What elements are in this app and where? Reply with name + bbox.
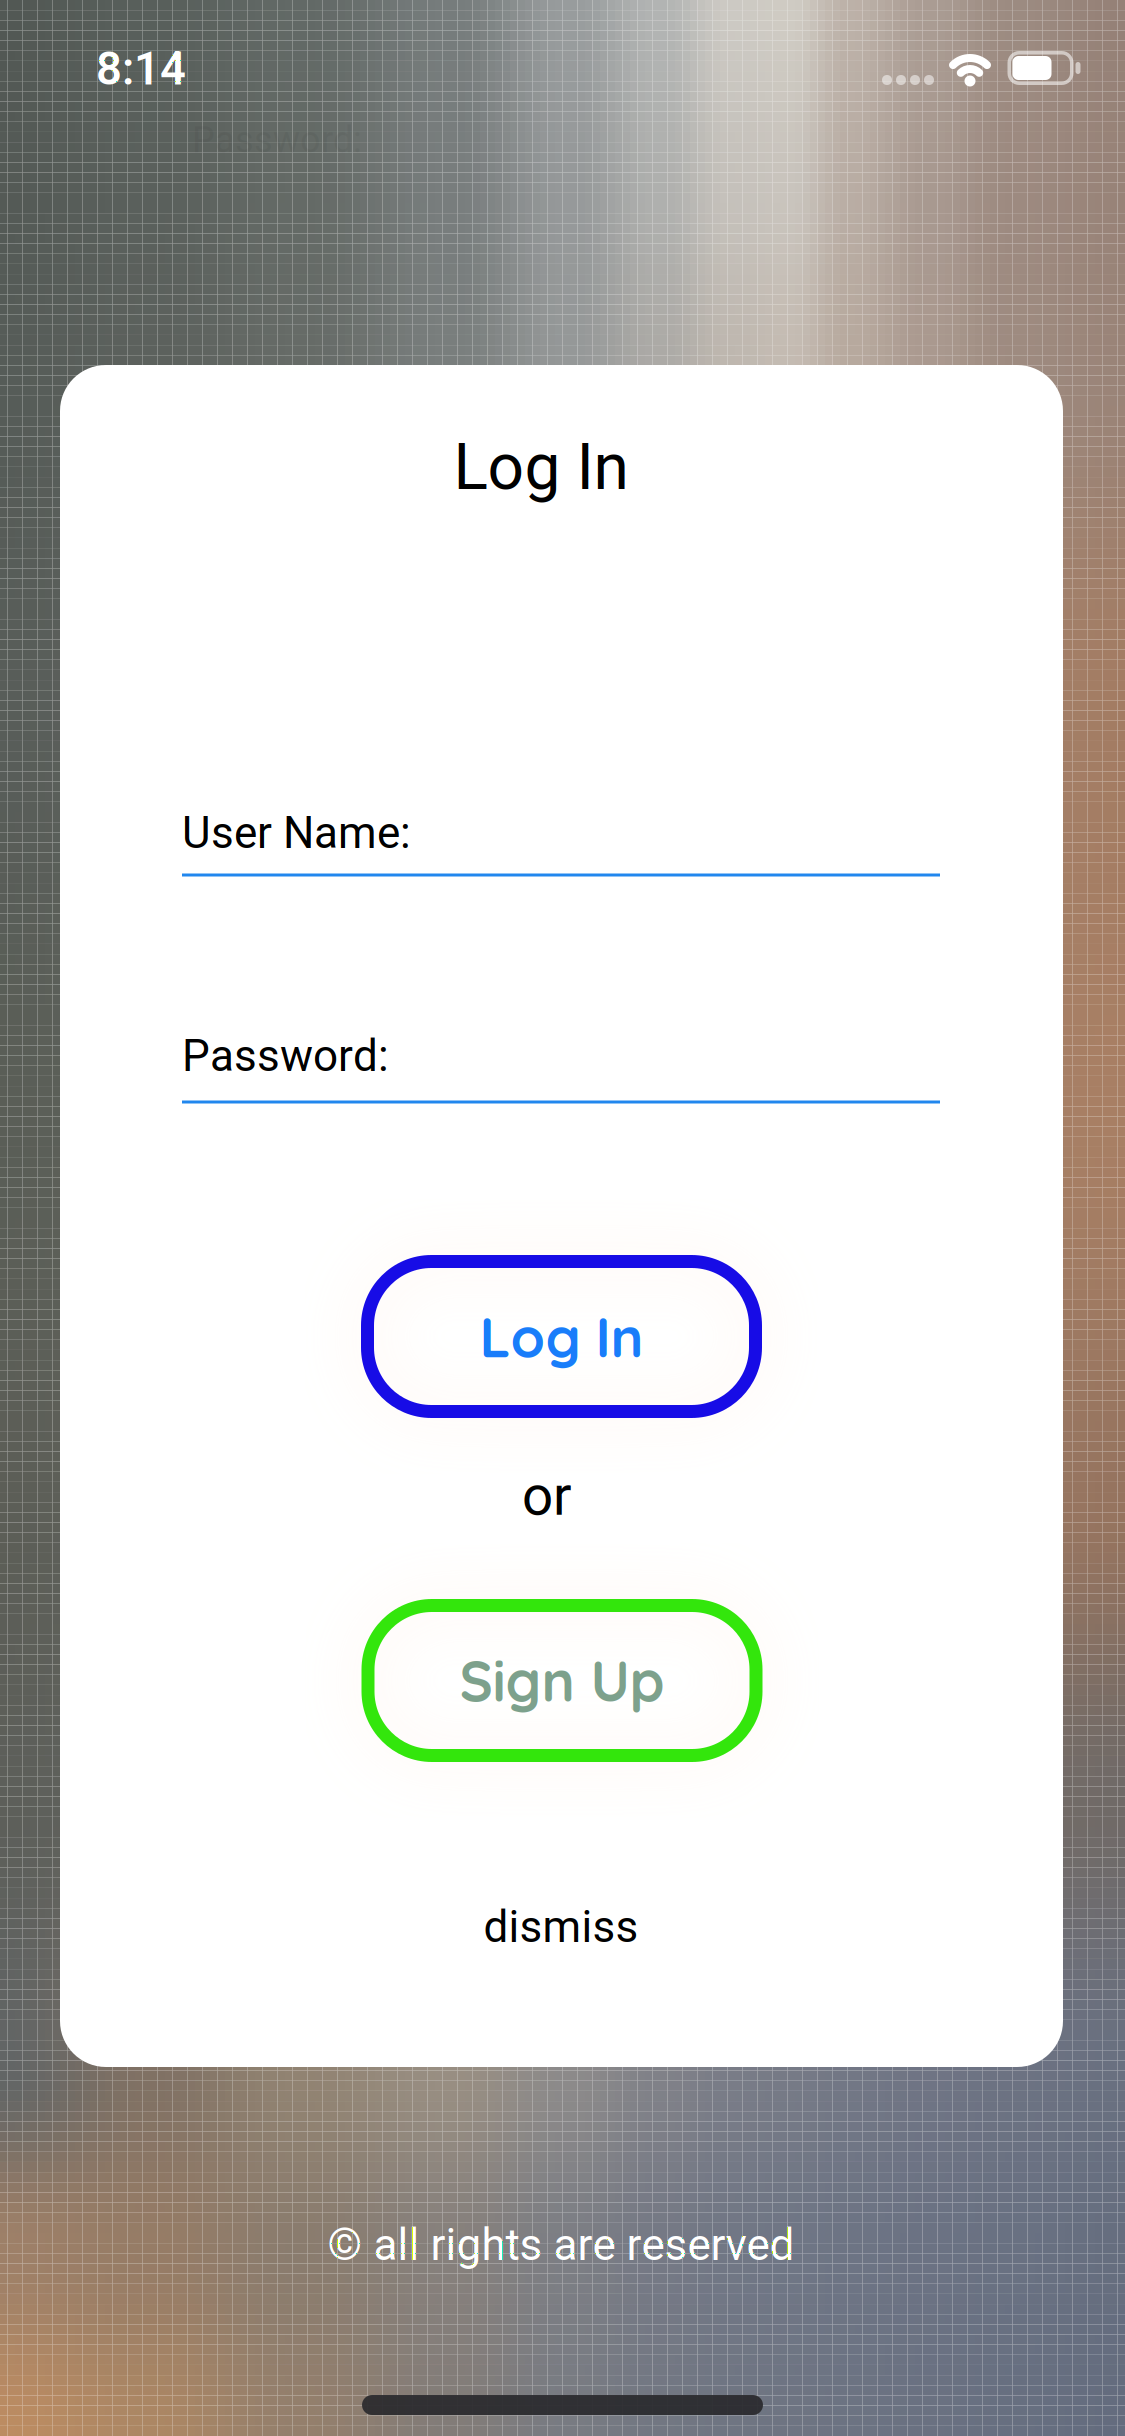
staticText: Password: bbox=[182, 1031, 389, 1081]
staticText: Password: bbox=[192, 119, 362, 160]
staticText: dismiss bbox=[483, 1902, 638, 1952]
staticText: or bbox=[522, 1465, 572, 1527]
staticText: © all rights are reserved bbox=[327, 2220, 794, 2270]
button[interactable]: User Name bbox=[0, 798, 1125, 888]
staticText: Log In bbox=[453, 430, 628, 503]
staticText: Log In bbox=[479, 1302, 643, 1371]
button[interactable]: Password bbox=[0, 1025, 1125, 1115]
staticText: User Name: bbox=[182, 808, 411, 858]
staticText: 8:14 bbox=[96, 43, 186, 95]
staticText: Sign Up bbox=[459, 1645, 664, 1715]
button[interactable]: Log In bbox=[361, 1255, 762, 1418]
button[interactable]: Sign Up bbox=[361, 1599, 762, 1762]
button[interactable]: dismiss bbox=[483, 1902, 638, 1952]
